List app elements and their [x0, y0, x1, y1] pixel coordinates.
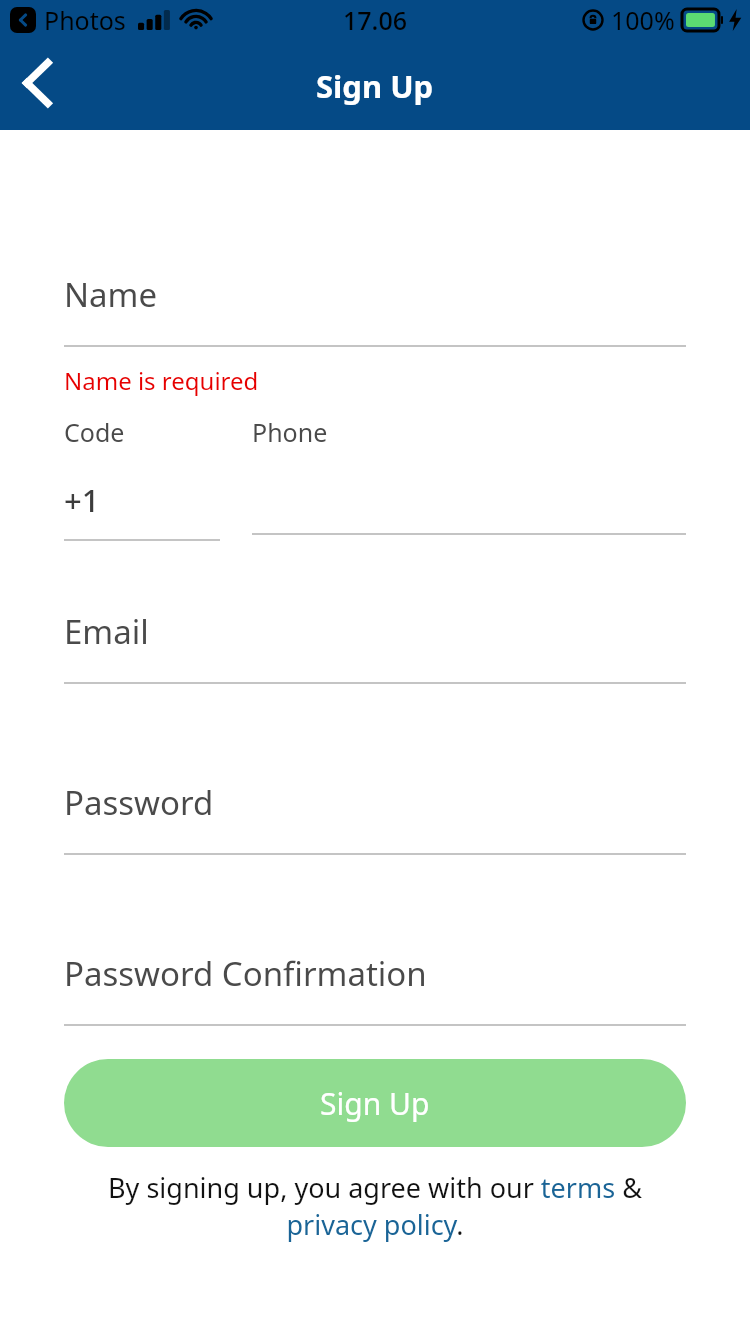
button[interactable]: Email: [0, 609, 750, 654]
staticText: Phone: [252, 415, 328, 449]
staticText: Email: [64, 609, 149, 654]
staticText: Photos: [44, 3, 126, 37]
staticText: Code: [64, 415, 125, 449]
staticText: Name is required: [64, 364, 259, 397]
staticText: 17.06: [343, 3, 408, 37]
staticText: Name: [64, 272, 158, 317]
button[interactable]: Name: [0, 272, 750, 317]
staticText: +1: [64, 479, 100, 521]
staticText: Password Confirmation: [64, 951, 427, 996]
button[interactable]: Back: [0, 46, 74, 120]
button[interactable]: Sign Up: [64, 1059, 686, 1147]
staticText: Sign Up: [316, 65, 434, 107]
staticText: By signing up, you agree with our terms …: [62, 1169, 688, 1243]
button[interactable]: Password Confirmation: [0, 951, 750, 996]
staticText: Password: [64, 780, 214, 825]
button[interactable]: Password: [0, 780, 750, 825]
button[interactable]: By signing up, you agree with our terms …: [62, 1169, 688, 1243]
staticText: 100%: [611, 3, 675, 37]
staticText: Sign Up: [320, 1083, 430, 1124]
